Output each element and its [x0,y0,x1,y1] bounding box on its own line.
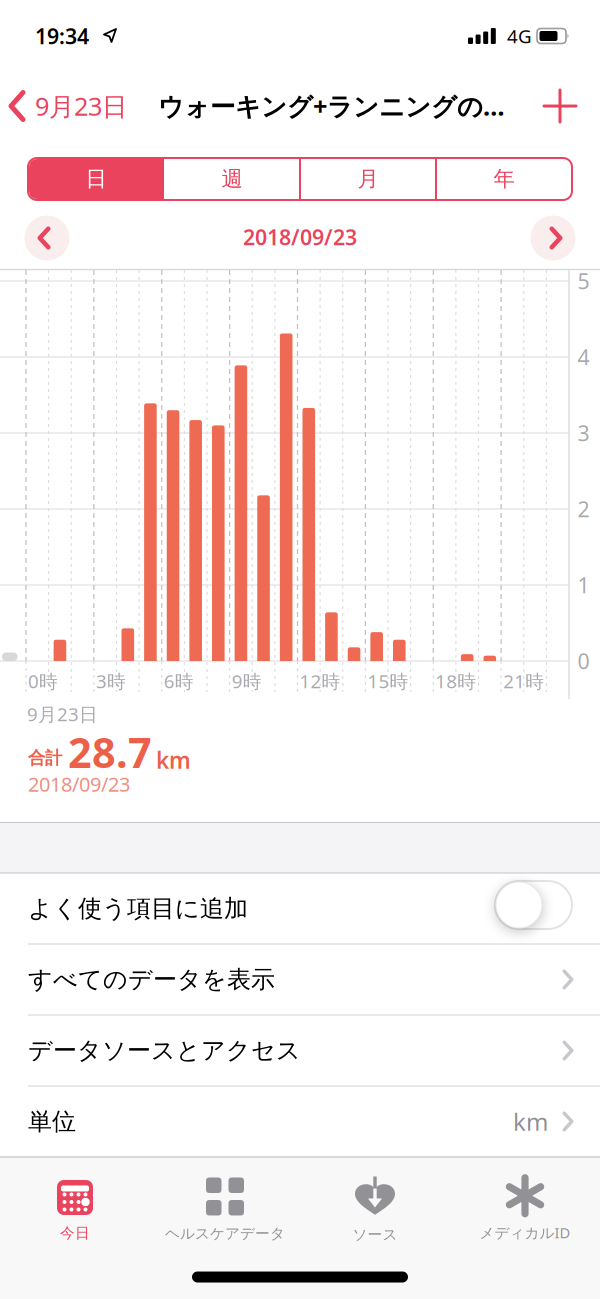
staticText: 週 [221,166,242,192]
staticText: 9月23日 [35,89,127,123]
staticText: すべてのデータを表示 [28,965,275,994]
staticText: 3時 [96,669,126,693]
button[interactable]: 今日 [0,1172,150,1250]
staticText: 日 [85,166,106,192]
staticText: 28.7 [68,725,152,779]
button[interactable]: 年 [436,158,572,200]
staticText: 15時 [367,669,408,693]
staticText: よく使う項目に追加 [28,894,248,923]
staticText: 2018/09/23 [28,771,130,797]
staticText: メディカルID [479,1223,570,1242]
staticText: 2018/09/23 [243,223,357,251]
staticText: 年 [493,166,514,192]
staticText: 月 [357,166,378,192]
button[interactable]: 次の日 [526,213,580,263]
staticText: 19:34 [35,22,89,50]
staticText: 今日 [60,1224,90,1242]
staticText: 18時 [435,669,476,693]
staticText: ウォーキング+ランニングの… [158,89,505,123]
button[interactable]: メディカルID [450,1170,600,1249]
staticText: km [513,1106,548,1137]
staticText: 5 [577,267,589,295]
staticText: 2 [577,495,589,523]
staticText: ソース [352,1225,397,1243]
staticText: データソースとアクセス [28,1036,301,1065]
staticText: 0時 [28,669,58,693]
staticText: 単位 [28,1107,76,1136]
staticText: 12時 [299,669,340,693]
button[interactable]: ヘルスケアデータ [150,1169,300,1250]
button[interactable]: 単位 [0,1086,600,1157]
staticText: ヘルスケアデータ [165,1224,285,1242]
staticText: km [156,745,191,775]
staticText: 9時 [232,669,262,693]
button[interactable]: データソースとアクセス [0,1015,600,1086]
button[interactable]: 追加 [543,89,577,123]
button[interactable]: 月 [300,158,436,200]
button[interactable]: 前の日 [20,213,74,263]
button[interactable]: すべてのデータを表示 [0,944,600,1015]
staticText: 21時 [503,669,544,693]
button[interactable]: ソース [300,1168,450,1251]
staticText: 0 [577,647,589,675]
staticText: 4G [507,24,532,48]
button[interactable]: 週 [164,158,300,200]
staticText: 6時 [164,669,194,693]
button[interactable]: よく使う項目に追加 [495,881,572,929]
staticText: 9月23日 [27,702,98,726]
staticText: 合計 [28,747,62,769]
staticText: 1 [577,571,589,599]
staticText: 4 [577,343,589,371]
button[interactable]: 日 [28,158,164,200]
button[interactable]: 9月23日 [8,84,156,128]
staticText: 3 [577,419,589,447]
